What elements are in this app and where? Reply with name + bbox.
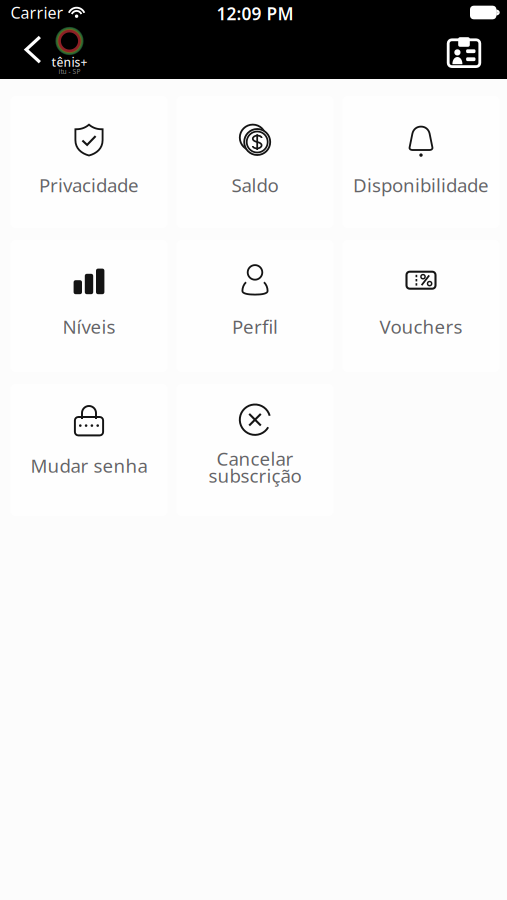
staticText: Vouchers xyxy=(379,314,462,339)
staticText: Carrier xyxy=(11,2,64,23)
staticText: Disponibilidade xyxy=(353,173,489,197)
button[interactable]: Carteirinha xyxy=(438,25,490,77)
staticText: itu - SP xyxy=(58,67,80,76)
staticText: Perfil xyxy=(232,314,278,339)
button[interactable]: Vouchers xyxy=(342,240,499,372)
staticText: Mudar senha xyxy=(30,453,147,478)
button[interactable]: Back xyxy=(13,24,53,75)
staticText: Cancelar xyxy=(216,446,293,471)
button[interactable]: tênis+ itu - SP xyxy=(43,27,95,77)
button[interactable]: Saldo xyxy=(176,96,333,228)
staticText: subscrição xyxy=(208,463,301,488)
button[interactable]: Mudar senha xyxy=(10,384,167,516)
staticText: Privacidade xyxy=(39,173,139,197)
staticText: Níveis xyxy=(62,314,115,339)
button[interactable]: Níveis xyxy=(10,240,167,372)
button[interactable]: Perfil xyxy=(176,240,333,372)
button[interactable]: Privacidade xyxy=(10,96,167,228)
staticText: 12:09 PM xyxy=(216,2,293,25)
staticText: Saldo xyxy=(231,173,278,197)
staticText: tênis+ xyxy=(51,54,87,70)
button[interactable]: Cancelar xyxy=(176,384,333,516)
button[interactable]: Disponibilidade xyxy=(342,96,499,228)
